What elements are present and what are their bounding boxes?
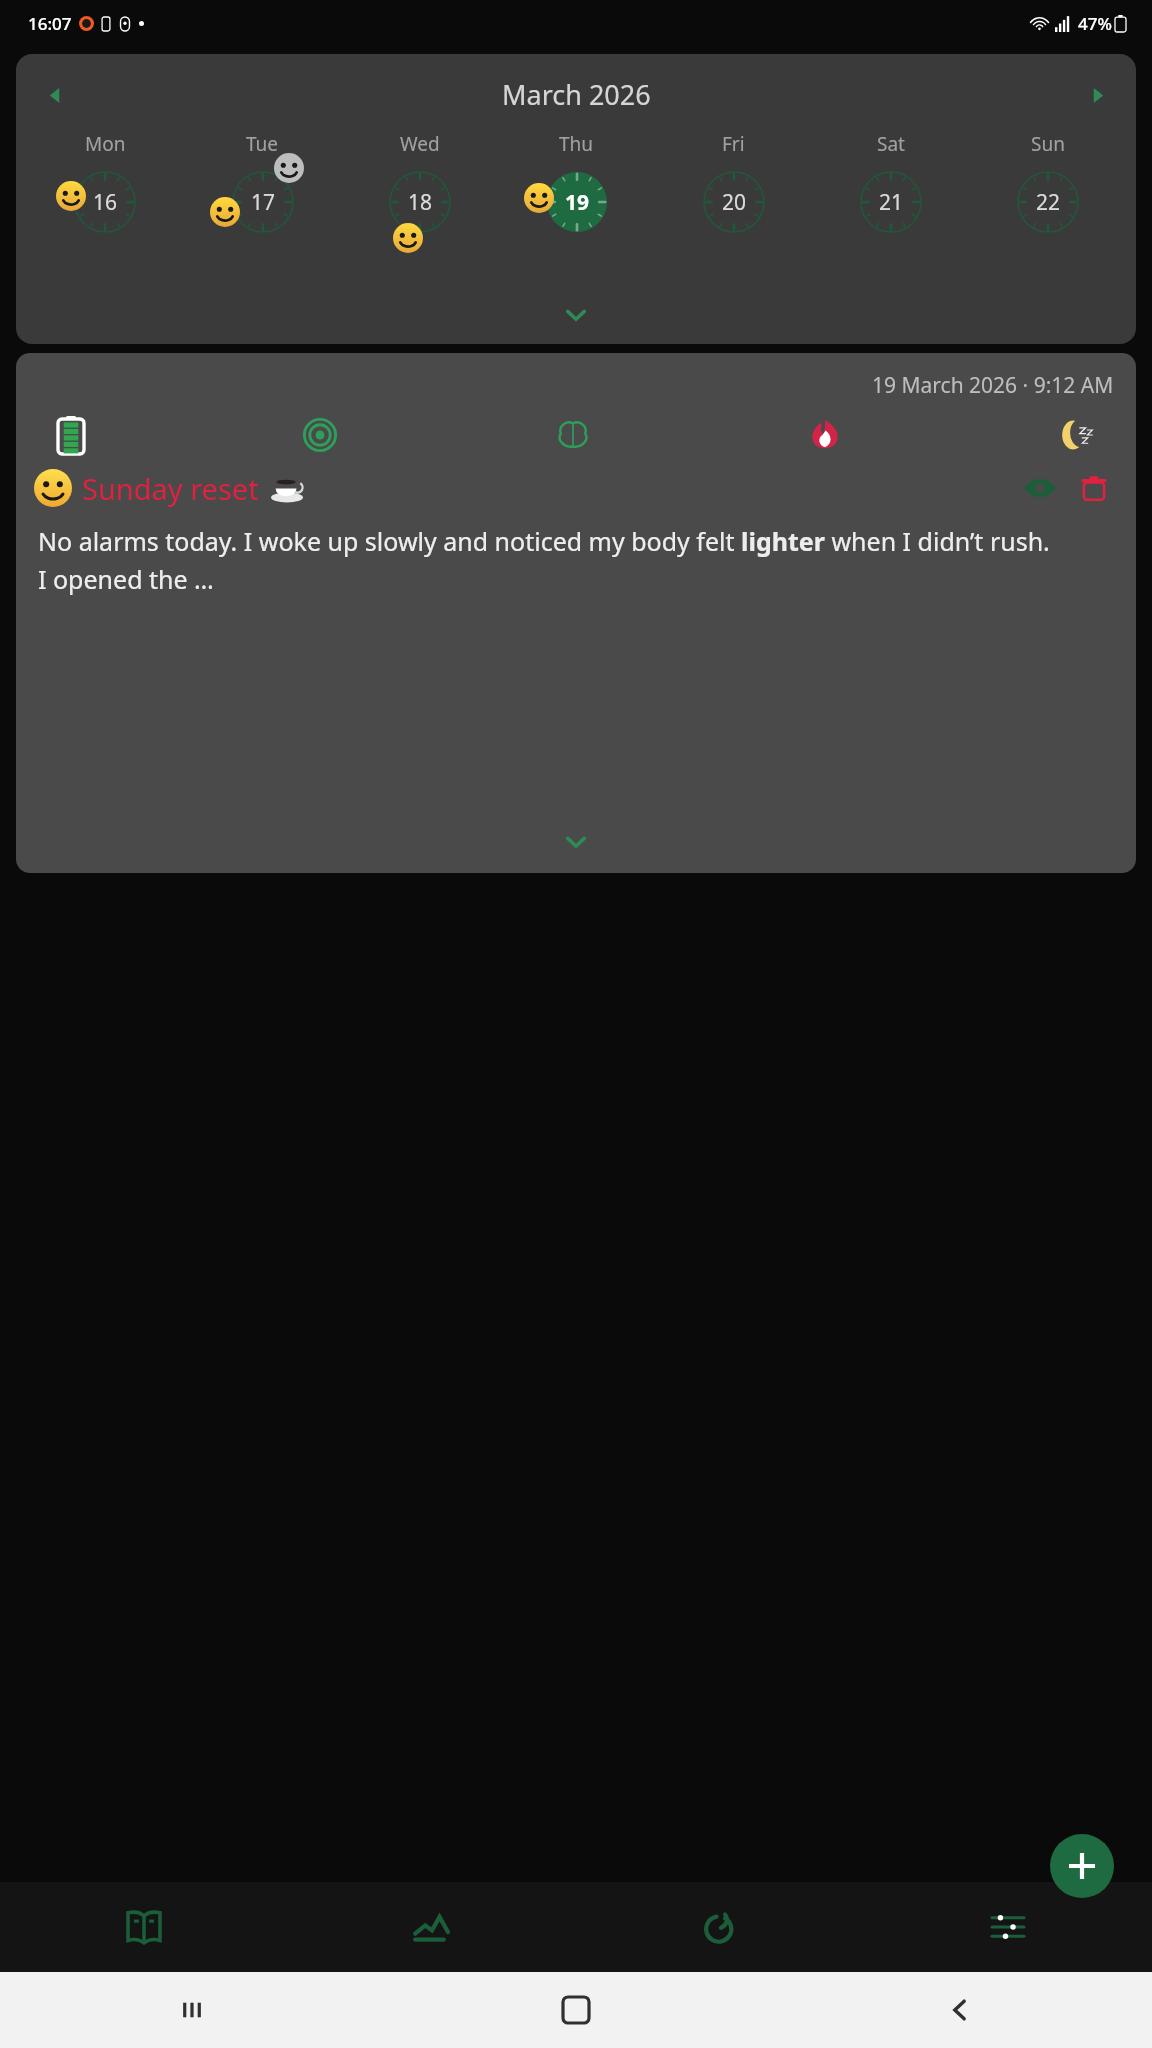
button[interactable]: 19: [546, 171, 608, 233]
button[interactable]: 19 March 2026 · 9:12 AM: [16, 353, 1136, 873]
staticText: Sat: [877, 131, 905, 157]
button[interactable]: 20: [703, 171, 765, 233]
button[interactable]: View entry: [1020, 468, 1060, 508]
button[interactable]: Delete entry: [1074, 468, 1114, 508]
button[interactable]: 18: [389, 171, 451, 233]
button[interactable]: Next month: [1080, 78, 1114, 112]
staticText: 16:07: [28, 12, 72, 35]
staticText: 22: [1036, 188, 1061, 217]
button[interactable]: Settings: [864, 1882, 1152, 1972]
button[interactable]: Expand calendar: [563, 302, 589, 328]
button[interactable]: Stats: [288, 1882, 576, 1972]
staticText: 17: [251, 188, 276, 217]
staticText: 16: [93, 188, 118, 217]
staticText: Sunday reset: [82, 469, 259, 508]
staticText: Sun: [1031, 131, 1065, 157]
button[interactable]: Journal: [0, 1882, 288, 1972]
button[interactable]: Previous month: [38, 78, 72, 112]
staticText: 21: [879, 188, 904, 217]
staticText: Fri: [722, 131, 745, 157]
button[interactable]: 16: [74, 171, 136, 233]
staticText: Mon: [85, 131, 126, 157]
button[interactable]: Add entry: [1050, 1834, 1114, 1898]
staticText: 47%: [1078, 12, 1112, 35]
staticText: 20: [722, 188, 747, 217]
staticText: Thu: [559, 131, 594, 157]
button[interactable]: 17: [232, 171, 294, 233]
button[interactable]: 21: [860, 171, 922, 233]
staticText: Wed: [400, 131, 440, 157]
button[interactable]: 22: [1017, 171, 1079, 233]
button[interactable]: Goals: [576, 1882, 864, 1972]
staticText: 19 March 2026 · 9:12 AM: [872, 371, 1114, 400]
staticText: 19: [565, 188, 590, 217]
staticText: Tue: [246, 131, 279, 157]
button[interactable]: Expand entry: [563, 829, 589, 855]
staticText: No alarms today. I woke up slowly and no…: [38, 524, 1050, 596]
staticText: March 2026: [502, 76, 651, 113]
staticText: 18: [408, 188, 433, 217]
